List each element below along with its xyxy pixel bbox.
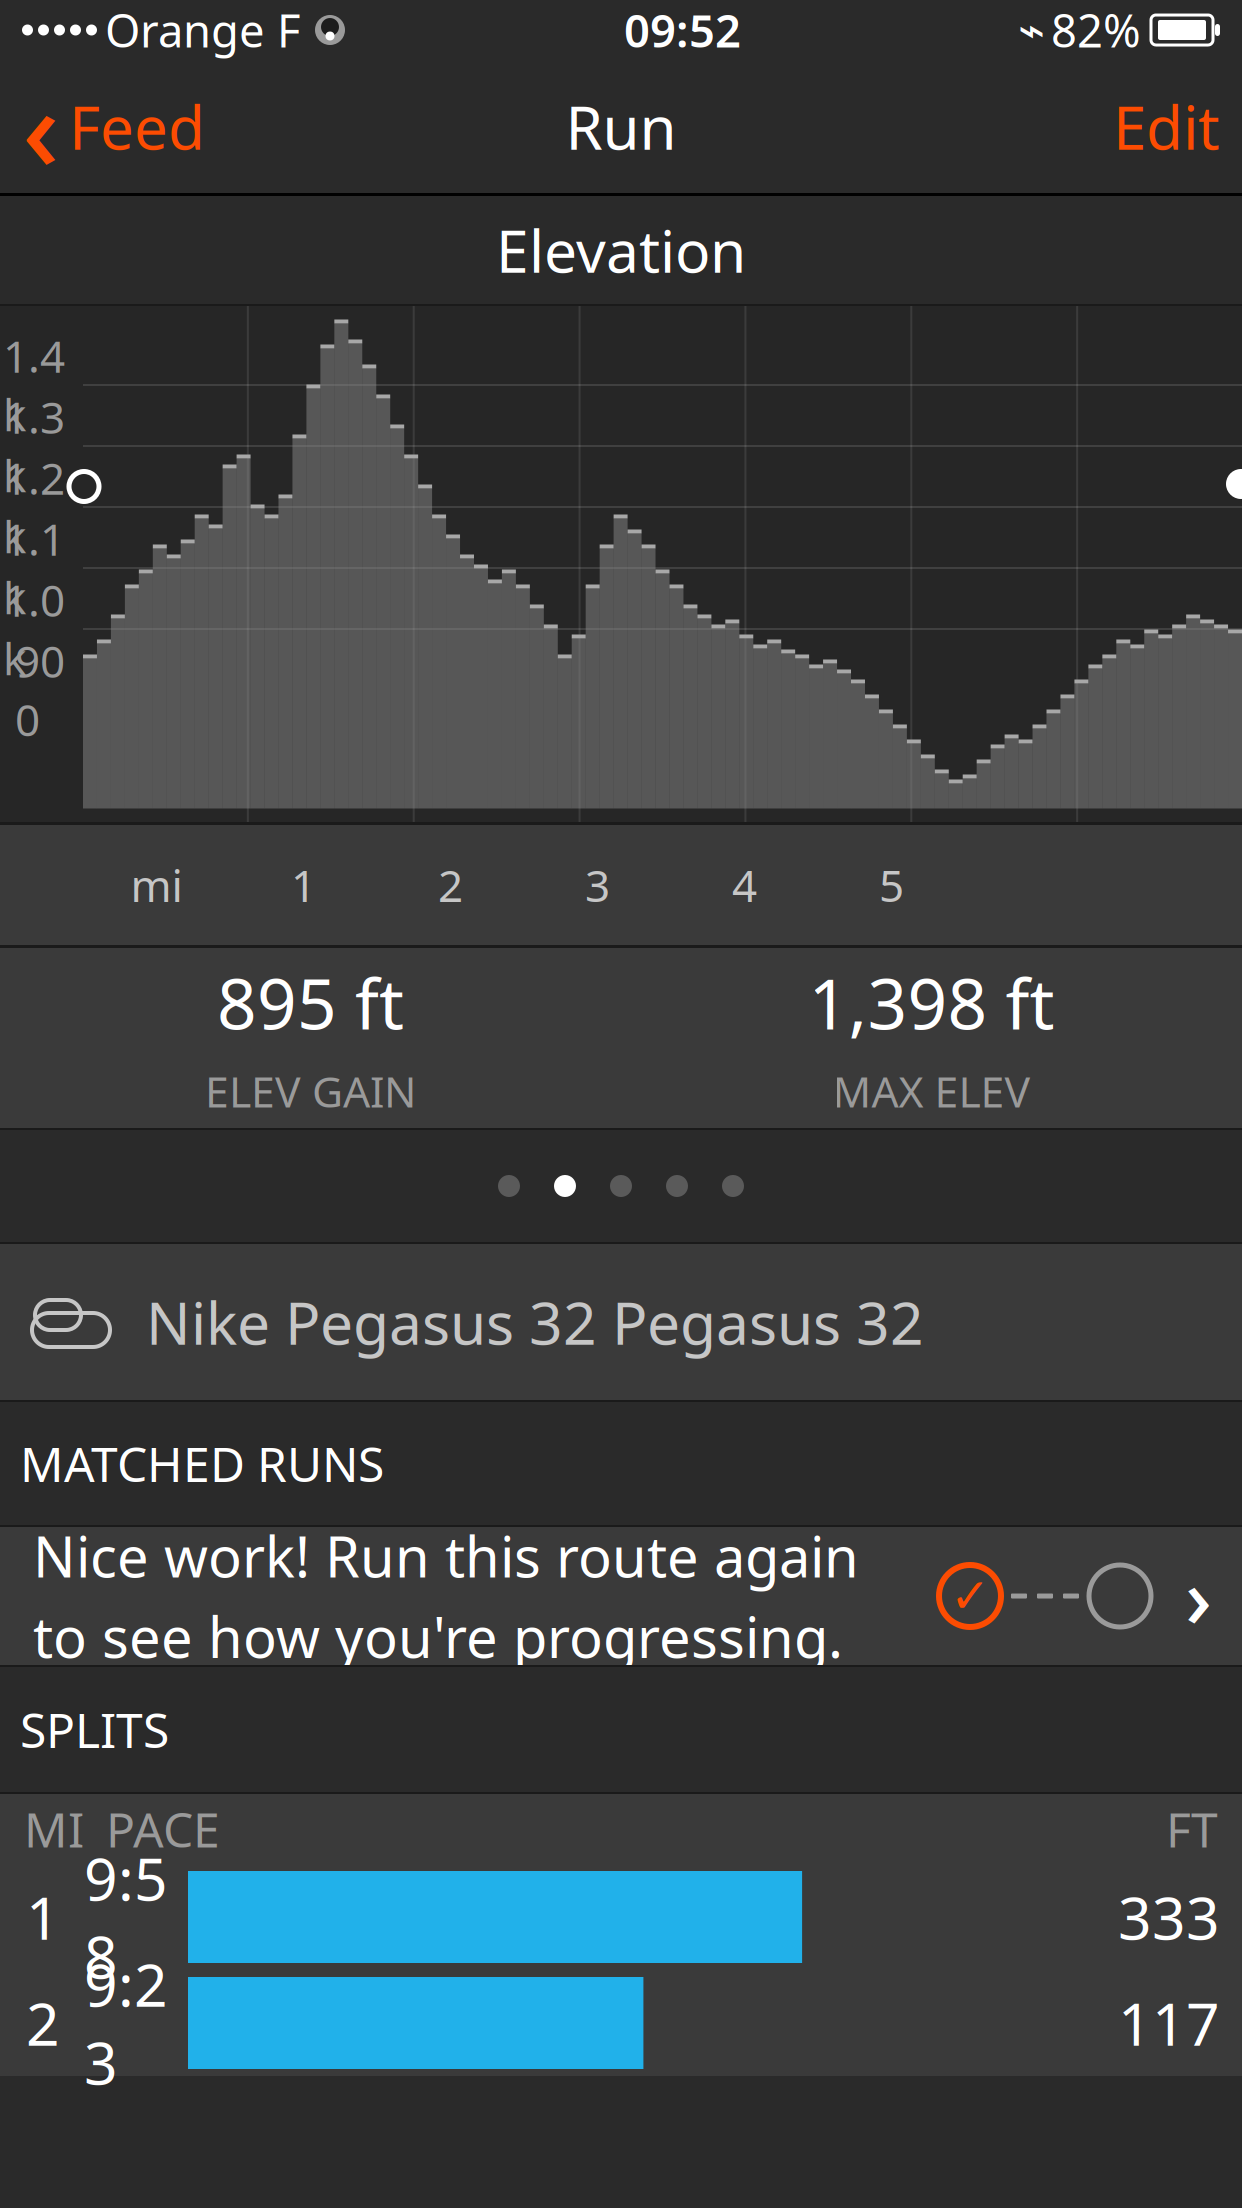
staticText: 3	[585, 856, 610, 914]
staticText: PACE	[106, 1797, 220, 1861]
staticText: 9:58	[84, 1839, 168, 1995]
staticText: 1.4k	[3, 327, 65, 443]
staticText: 1.0k	[3, 571, 65, 687]
staticText: MAX ELEV	[832, 1063, 1030, 1119]
button[interactable]: ‹	[0, 81, 227, 171]
staticText: 1,398 ft	[808, 957, 1054, 1049]
button[interactable]: Edit	[1091, 81, 1242, 171]
staticText: ›	[1185, 1541, 1212, 1651]
staticText: Feed	[69, 87, 205, 166]
staticText: Run	[565, 87, 676, 166]
button[interactable]: Nice work! Run this route again	[0, 1527, 1242, 1665]
staticText: Edit	[1113, 87, 1220, 166]
button[interactable]: Nike Pegasus 32 Pegasus 32	[0, 1244, 1242, 1400]
staticText: 1.3k	[3, 388, 65, 504]
staticText: Orange F	[105, 0, 301, 60]
staticText: Elevation	[496, 211, 746, 289]
staticText: 2	[438, 856, 463, 914]
staticText: 1.1k	[3, 510, 65, 626]
staticText: 895 ft	[217, 957, 404, 1049]
staticText: ELEV GAIN	[205, 1063, 416, 1119]
staticText: 9:23	[84, 1945, 168, 2101]
staticText: SPLITS	[20, 1698, 169, 1761]
staticText: 82%	[1051, 0, 1141, 60]
staticText: 1.2k	[3, 449, 65, 565]
staticText: ✓	[950, 1569, 990, 1623]
staticText: Nike Pegasus 32 Pegasus 32	[146, 1283, 924, 1361]
staticText: mi	[130, 856, 182, 914]
staticText: MI	[24, 1797, 84, 1861]
staticText: 2	[26, 1984, 60, 2062]
staticText: FT	[1166, 1797, 1218, 1861]
staticText: 09:52	[624, 0, 741, 60]
staticText: ‹	[22, 50, 59, 203]
staticText: 1	[26, 1878, 60, 1956]
staticText: 1	[291, 856, 316, 914]
staticText: to see how you're progressing.	[33, 1599, 843, 1673]
staticText: 4	[732, 856, 757, 914]
staticText: 5	[879, 856, 904, 914]
staticText: MATCHED RUNS	[20, 1432, 384, 1495]
staticText: Nice work! Run this route again	[33, 1519, 859, 1593]
staticText: 117	[1118, 1984, 1220, 2062]
staticText: 900	[15, 632, 65, 748]
staticText: ⌁	[1018, 4, 1045, 56]
staticText: 333	[1118, 1878, 1220, 1956]
